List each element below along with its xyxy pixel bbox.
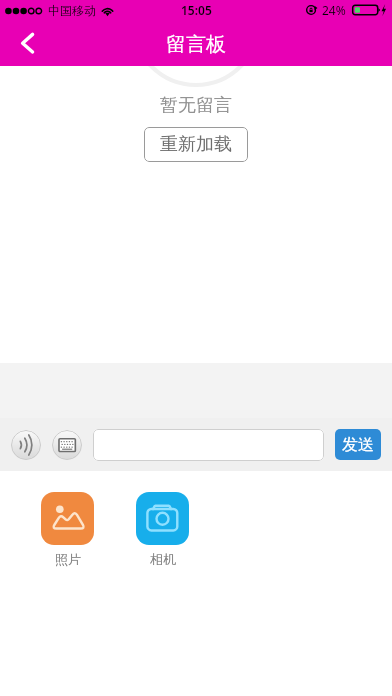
button[interactable]: Keyboard <box>52 430 82 460</box>
staticText: 留言板 <box>166 32 226 57</box>
button[interactable]: Voice <box>11 430 41 460</box>
staticText: 相机 <box>150 551 176 567</box>
button[interactable]: Back <box>0 20 55 66</box>
staticText: 重新加载 <box>160 133 232 156</box>
staticText: 照片 <box>55 551 81 567</box>
staticText: 24% <box>322 2 346 18</box>
button[interactable]: 照片 <box>41 492 94 545</box>
staticText: 15:05 <box>181 2 212 18</box>
button[interactable] <box>93 429 324 461</box>
staticText: 中国移动 <box>48 3 96 18</box>
button[interactable]: 重新加载 <box>144 127 248 162</box>
button[interactable]: 相机 <box>136 492 189 545</box>
staticText: 暂无留言 <box>160 94 232 117</box>
button[interactable]: 发送 <box>335 429 381 460</box>
staticText: 发送 <box>342 435 374 455</box>
